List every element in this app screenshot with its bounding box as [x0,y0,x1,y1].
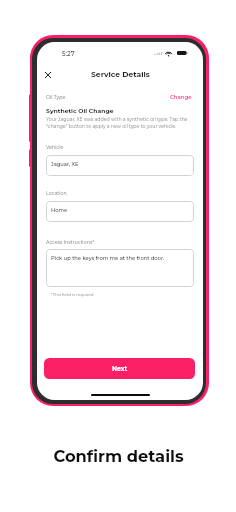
staticText: Oil Type [46,94,66,100]
button[interactable]: Close [41,68,54,81]
staticText: Home [51,207,68,213]
button[interactable]: Jaguar, XE [46,155,194,176]
staticText: Pick up the keys from me at the front do… [51,255,165,261]
staticText: Confirm details [53,446,184,466]
staticText: Location [46,190,67,196]
staticText: Your Jaguar, XE was added with a synthet… [46,116,193,130]
staticText: Synthetic Oil Change [46,107,114,114]
button[interactable]: Pick up the keys from me at the front do… [46,249,194,287]
staticText: Access Instructions* [46,239,95,245]
button[interactable]: Change [167,91,195,104]
staticText: 5:27 [62,50,75,58]
staticText: Service Details [91,70,150,79]
button[interactable]: Next [44,358,195,379]
staticText: Next [112,365,128,373]
staticText: *This field is required [51,292,94,297]
staticText: Jaguar, XE [51,161,79,167]
staticText: Vehicle [46,144,64,150]
button[interactable]: Home [46,201,194,222]
staticText: Change [170,94,192,101]
